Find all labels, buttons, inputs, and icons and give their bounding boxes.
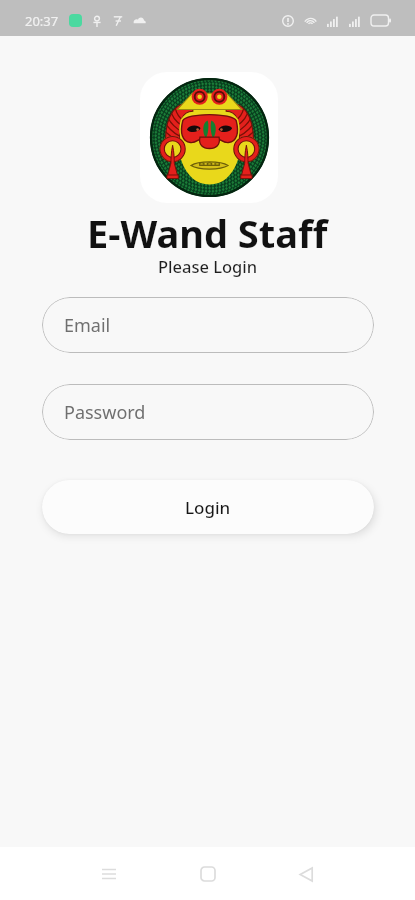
staticText: Login <box>185 496 231 519</box>
button[interactable]: Password <box>42 384 374 440</box>
button[interactable]: Home <box>188 854 228 894</box>
staticText: 20:37 <box>25 12 59 30</box>
button[interactable]: Login <box>42 480 374 534</box>
staticText: Email <box>64 313 111 338</box>
staticText: Please Login <box>158 255 258 277</box>
button[interactable]: Email <box>42 297 374 353</box>
staticText: E-Wand Staff <box>87 207 328 259</box>
button[interactable]: Back <box>286 854 326 894</box>
staticText: Password <box>64 400 146 425</box>
button[interactable]: Recent apps <box>89 854 129 894</box>
